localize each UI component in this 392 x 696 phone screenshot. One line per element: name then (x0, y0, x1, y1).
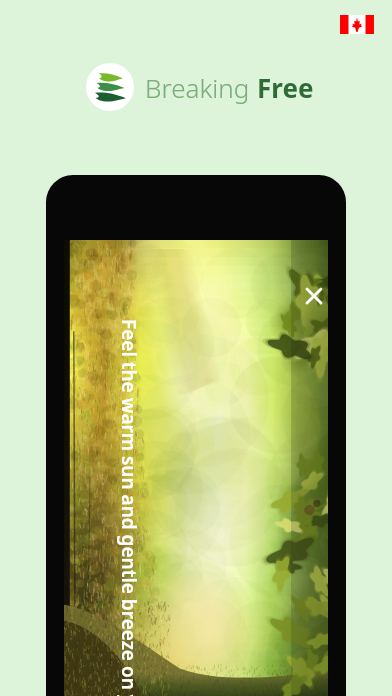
button[interactable]: Breaking (86, 63, 314, 111)
staticText: Free (257, 70, 314, 105)
button[interactable]: Close (300, 282, 328, 310)
button[interactable]: Canada region (340, 15, 374, 34)
staticText: Breaking (145, 70, 257, 105)
